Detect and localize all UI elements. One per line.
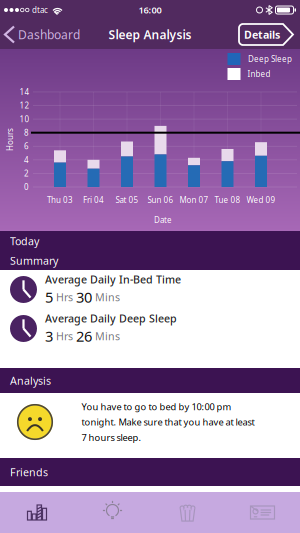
- staticText: Friends: [10, 465, 48, 479]
- staticText: 10: [19, 114, 29, 124]
- button[interactable]: Average Daily Deep Sleep: [0, 311, 300, 346]
- staticText: Sleep Analysis: [108, 26, 191, 42]
- button[interactable]: Statistics: [0, 505, 75, 520]
- staticText: 8: [24, 127, 29, 138]
- staticText: Sun 06: [147, 195, 173, 205]
- button[interactable]: Average Daily In-Bed Time: [0, 272, 300, 307]
- button[interactable]: Friends: [225, 503, 300, 521]
- staticText: Average Daily Deep Sleep: [45, 311, 177, 325]
- staticText: Thu 03: [47, 195, 73, 205]
- staticText: 30: [76, 287, 92, 307]
- button[interactable]: Dashboard: [0, 26, 80, 42]
- staticText: Today: [10, 234, 39, 248]
- staticText: Hours: [0, 134, 21, 145]
- button[interactable]: Details: [239, 24, 300, 45]
- staticText: 3: [45, 326, 53, 346]
- staticText: Summary: [10, 253, 58, 268]
- staticText: 6: [24, 141, 29, 151]
- staticText: You have to go to bed by 10:00 pm tonigh…: [81, 400, 254, 444]
- staticText: 4: [24, 154, 29, 165]
- staticText: Fri 04: [83, 195, 104, 205]
- staticText: Details: [244, 27, 280, 42]
- staticText: Deep Sleep: [248, 54, 292, 64]
- staticText: Analysis: [10, 373, 51, 388]
- staticText: 12: [19, 100, 29, 111]
- staticText: Date: [154, 215, 172, 225]
- staticText: Dashboard: [18, 26, 80, 42]
- staticText: Average Daily In-Bed Time: [45, 272, 181, 286]
- staticText: Sat 05: [115, 195, 138, 205]
- staticText: Hrs: [56, 290, 73, 304]
- staticText: dtac: [32, 5, 48, 15]
- staticText: 26: [76, 326, 92, 346]
- button[interactable]: Tips: [75, 502, 150, 522]
- staticText: Hrs: [56, 329, 73, 343]
- staticText: 16:00: [138, 4, 161, 16]
- staticText: Wed 09: [246, 195, 275, 205]
- staticText: 2: [24, 168, 29, 179]
- staticText: Mins: [95, 329, 120, 343]
- staticText: 14: [19, 87, 29, 97]
- button[interactable]: Rewards: [150, 503, 225, 522]
- staticText: Inbed: [247, 69, 270, 79]
- staticText: Tue 08: [214, 195, 240, 205]
- staticText: 5: [45, 287, 53, 307]
- staticText: Mon 07: [179, 195, 208, 205]
- staticText: 0: [24, 182, 29, 192]
- staticText: Mins: [95, 290, 120, 304]
